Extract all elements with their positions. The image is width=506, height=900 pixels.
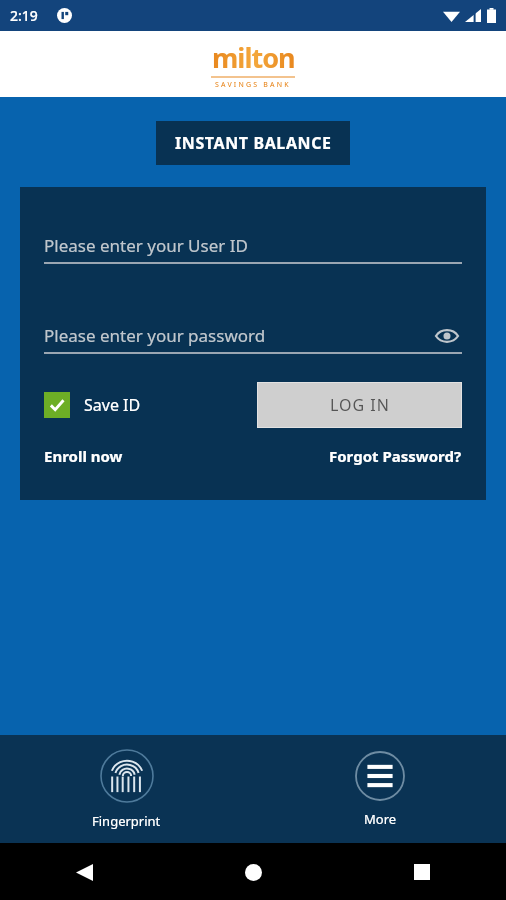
button[interactable]: Back (63, 851, 105, 893)
staticText: Forgot Password? (329, 446, 462, 466)
staticText: More (364, 810, 397, 828)
button[interactable]: Recent apps (401, 851, 443, 893)
button[interactable]: Fingerprint (92, 749, 161, 830)
staticText: Enroll now (44, 446, 123, 466)
staticText: SAVINGS BANK (215, 80, 291, 90)
staticText: LOG IN (330, 394, 390, 416)
button[interactable]: Forgot Password? (329, 446, 462, 466)
button[interactable]: Please enter your User ID (44, 223, 462, 265)
button[interactable]: Enroll now (44, 446, 123, 466)
staticText: Please enter your User ID (44, 234, 248, 257)
button[interactable]: More (355, 751, 405, 828)
staticText: INSTANT BALANCE (175, 132, 332, 154)
button[interactable]: INSTANT BALANCE (156, 121, 350, 165)
staticText: Fingerprint (92, 812, 161, 830)
button[interactable]: LOG IN (257, 382, 462, 428)
button[interactable]: Show password (432, 321, 462, 351)
button[interactable]: Save ID (44, 392, 141, 418)
button[interactable]: Home (232, 851, 274, 893)
staticText: Please enter your password (44, 324, 266, 347)
button[interactable]: Please enter your password (44, 313, 462, 355)
staticText: 2:19 (10, 6, 38, 25)
staticText: Save ID (84, 394, 141, 416)
staticText: milton (212, 39, 295, 76)
